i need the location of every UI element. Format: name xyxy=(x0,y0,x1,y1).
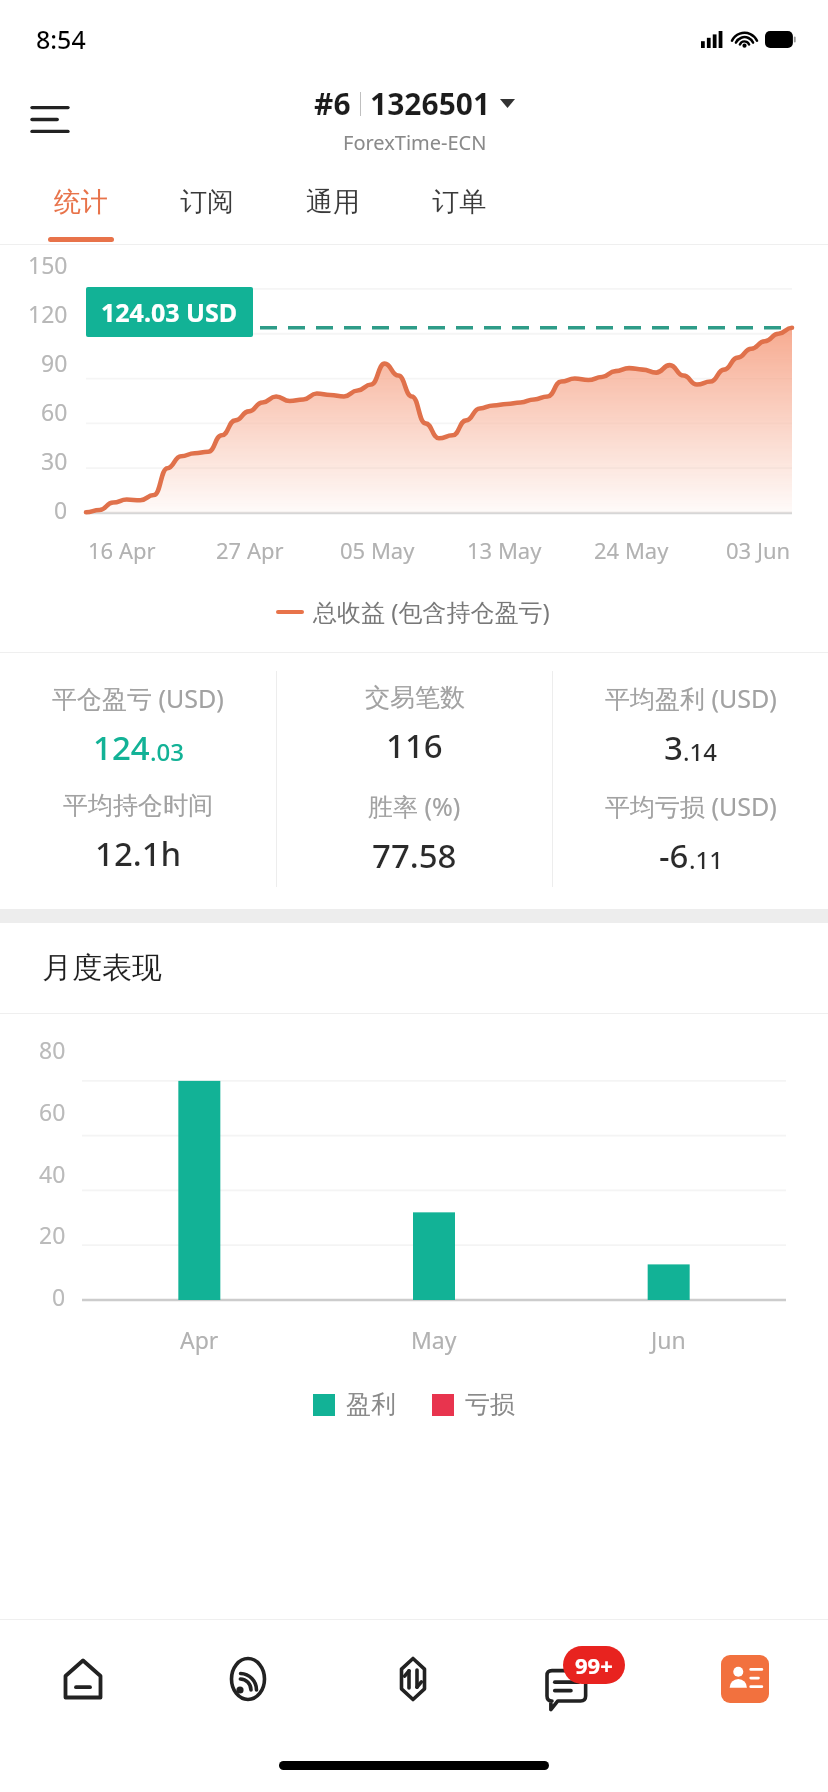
button[interactable]: 统计 xyxy=(18,160,144,244)
staticText: 05 May xyxy=(340,535,415,565)
staticText: 124.03 USD xyxy=(101,295,238,329)
staticText: 116 xyxy=(386,723,443,768)
staticText: 120 xyxy=(28,298,68,329)
staticText: May xyxy=(411,1324,457,1355)
button[interactable]: 交易笔数 xyxy=(277,671,552,779)
button[interactable]: 胜率 (%) xyxy=(277,779,552,887)
staticText: 订阅 xyxy=(180,185,234,219)
staticText: 交易笔数 xyxy=(365,682,465,713)
staticText: 150 xyxy=(28,249,68,280)
staticText: 订单 xyxy=(432,185,486,219)
button[interactable]: 平均持仓时间 xyxy=(0,779,276,887)
button[interactable]: 平均盈利 (USD) xyxy=(553,671,828,779)
staticText: 03 Jun xyxy=(726,535,791,565)
button[interactable]: Trade xyxy=(330,1620,496,1738)
staticText: 60 xyxy=(39,1096,66,1127)
staticText: 平仓盈亏 (USD) xyxy=(52,681,224,715)
staticText: 统计 xyxy=(54,185,108,219)
staticText: Apr xyxy=(180,1324,219,1355)
staticText: 99+ xyxy=(575,1650,613,1680)
staticText: 平均盈利 (USD) xyxy=(605,681,777,715)
staticText: 24 May xyxy=(594,535,669,565)
button[interactable]: 通用 xyxy=(270,160,396,244)
staticText: 平均亏损 (USD) xyxy=(605,789,777,823)
staticText: 8:54 xyxy=(36,22,86,56)
staticText: 27 Apr xyxy=(216,535,284,565)
button[interactable]: 平仓盈亏 (USD) xyxy=(0,671,276,779)
staticText: 124 xyxy=(93,725,150,770)
staticText: 60 xyxy=(41,396,68,427)
button[interactable]: Messages xyxy=(496,1620,662,1738)
staticText: 总收益 (包含持仓盈亏) xyxy=(313,595,550,628)
staticText: 平均持仓时间 xyxy=(63,790,213,821)
button[interactable]: Menu xyxy=(22,91,78,147)
staticText: .03 xyxy=(150,735,184,768)
staticText: #6 xyxy=(314,83,351,124)
button[interactable]: 订单 xyxy=(396,160,522,244)
button[interactable]: Signals xyxy=(165,1620,330,1738)
staticText: 20 xyxy=(39,1219,66,1250)
button[interactable]: 订阅 xyxy=(144,160,270,244)
staticText: -6 xyxy=(659,833,689,878)
button[interactable]: 平均亏损 (USD) xyxy=(553,779,828,887)
staticText: Jun xyxy=(651,1324,686,1355)
staticText: .11 xyxy=(689,843,723,876)
staticText: 77.58 xyxy=(372,833,457,878)
staticText: 0 xyxy=(54,494,68,525)
staticText: 16 Apr xyxy=(88,535,156,565)
staticText: 亏损 xyxy=(465,1389,515,1420)
staticText: 胜率 (%) xyxy=(368,789,461,823)
staticText: ForexTime-ECN xyxy=(343,129,487,156)
staticText: 3 xyxy=(664,725,683,770)
staticText: 盈利 xyxy=(346,1389,396,1420)
staticText: 1326501 xyxy=(370,83,491,124)
staticText: 通用 xyxy=(306,185,360,219)
staticText: 12.1h xyxy=(95,831,182,876)
staticText: 月度表现 xyxy=(42,949,162,987)
staticText: 80 xyxy=(39,1034,66,1065)
staticText: 13 May xyxy=(467,535,542,565)
staticText: 40 xyxy=(39,1158,66,1189)
staticText: .14 xyxy=(683,735,717,768)
button[interactable]: Home xyxy=(0,1620,165,1738)
staticText: 90 xyxy=(41,347,68,378)
staticText: 0 xyxy=(52,1281,66,1312)
button[interactable]: Profile xyxy=(662,1620,828,1738)
staticText: 30 xyxy=(41,445,68,476)
